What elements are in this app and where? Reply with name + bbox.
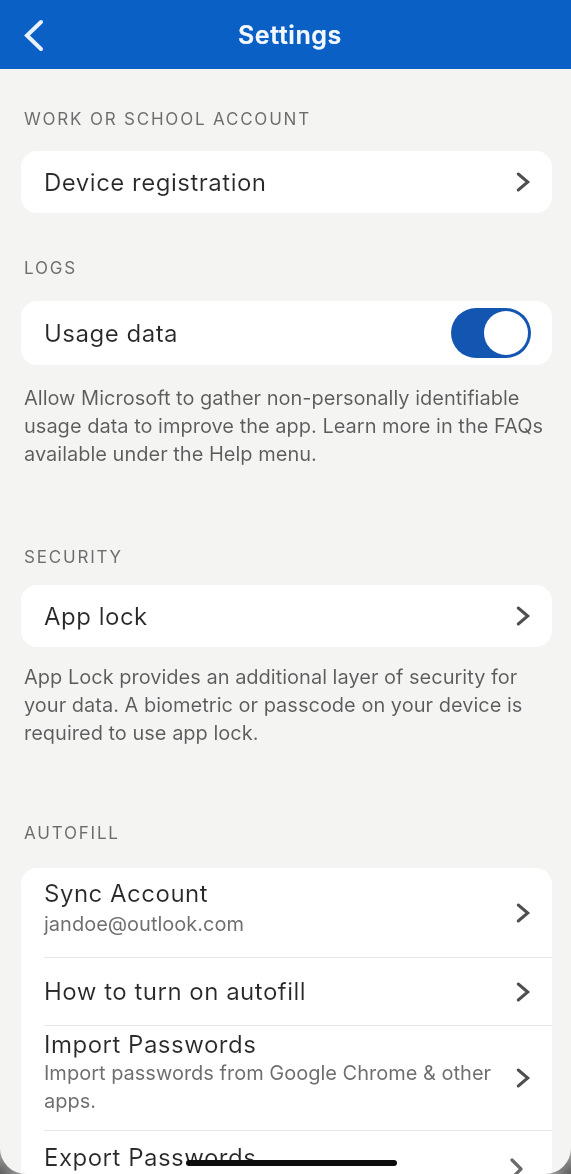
button[interactable]: Sync Account — [21, 868, 552, 957]
button[interactable]: Device registration — [21, 151, 552, 213]
staticText: Sync Account — [44, 879, 209, 908]
staticText: Device registration — [44, 168, 516, 197]
staticText: App Lock provides an additional layer of… — [24, 665, 523, 745]
staticText: jandoe@outlook.com — [44, 912, 244, 936]
staticText: WORK OR SCHOOL ACCOUNT — [24, 109, 311, 130]
button[interactable]: How to turn on autofill — [21, 958, 552, 1025]
staticText: Import Passwords — [44, 1030, 257, 1059]
button[interactable] — [451, 308, 531, 358]
staticText: Usage data — [44, 319, 451, 348]
button[interactable] — [14, 15, 54, 55]
staticText: Export Passwords — [44, 1143, 552, 1172]
staticText: How to turn on autofill — [44, 977, 516, 1006]
staticText: Allow Microsoft to gather non-personally… — [24, 386, 543, 466]
staticText: SECURITY — [24, 547, 123, 568]
button[interactable]: Import Passwords — [21, 1026, 552, 1130]
button[interactable]: Export Passwords — [21, 1131, 552, 1174]
staticText: App lock — [44, 602, 516, 631]
button[interactable]: App lock — [21, 585, 552, 647]
staticText: AUTOFILL — [24, 823, 120, 844]
staticText: Settings — [238, 20, 342, 50]
staticText: LOGS — [24, 258, 77, 279]
staticText: Import passwords from Google Chrome & ot… — [44, 1061, 492, 1112]
